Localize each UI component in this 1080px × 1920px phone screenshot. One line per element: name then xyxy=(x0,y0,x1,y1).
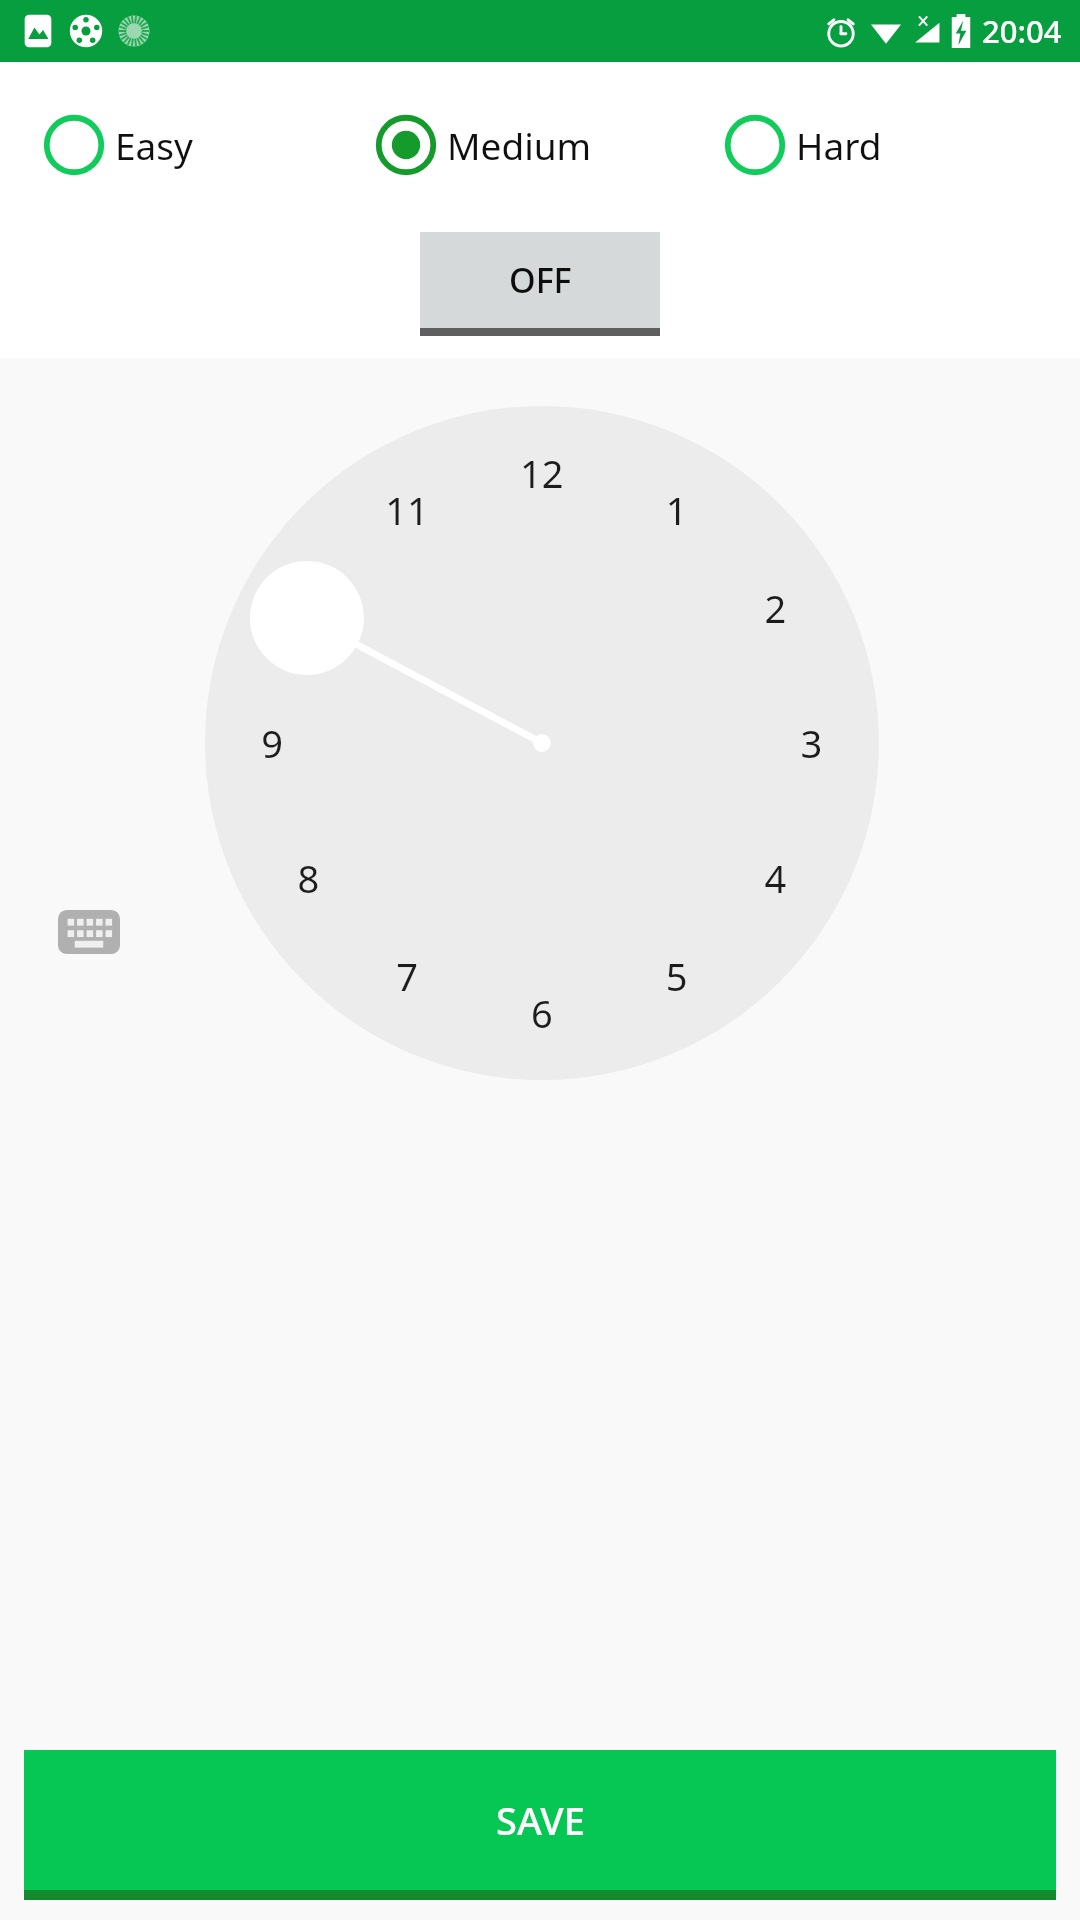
button[interactable]: OFF xyxy=(420,232,660,336)
button[interactable]: Easy xyxy=(25,116,369,174)
button[interactable]: SAVE xyxy=(24,1750,1056,1900)
staticText: Easy xyxy=(115,120,193,170)
staticText: OFF xyxy=(509,257,572,303)
button[interactable]: Hard xyxy=(712,116,1055,174)
staticText: Hard xyxy=(796,120,882,170)
staticText: Medium xyxy=(447,120,592,170)
staticText: SAVE xyxy=(496,1794,585,1846)
button[interactable]: Switch to text input xyxy=(58,910,120,954)
button[interactable]: Medium xyxy=(369,116,712,174)
staticText: 20:04 xyxy=(982,10,1062,52)
